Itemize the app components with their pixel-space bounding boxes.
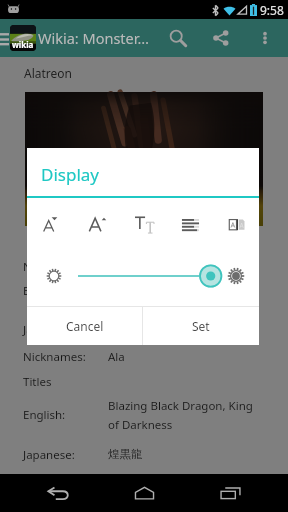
button[interactable]: Open navigation drawer (0, 19, 9, 57)
button[interactable]: Back (30, 474, 86, 512)
staticText: Wikia: Monster… (38, 28, 160, 48)
staticText: 煌黒龍 (108, 447, 143, 461)
staticText: 9:58 (260, 2, 284, 18)
staticText: Japanese (23, 322, 108, 338)
button[interactable]: Set (143, 307, 259, 345)
staticText: Japanese: (23, 447, 108, 463)
staticText: Blazing Black Dragon, King of Darkness (108, 398, 253, 432)
button[interactable]: Change theme (213, 198, 259, 251)
button[interactable]: More options (247, 19, 282, 57)
staticText: Display (41, 163, 99, 186)
button[interactable]: Share (201, 19, 240, 57)
staticText: Cancel (66, 318, 104, 334)
staticText: Element: (23, 283, 108, 299)
button[interactable]: Brightness (65, 263, 235, 289)
button[interactable]: Increase text size (74, 198, 121, 251)
staticText: Alatreon (24, 65, 72, 81)
staticText: English: (23, 407, 108, 423)
staticText: Ala (108, 349, 125, 365)
button[interactable]: Text alignment (167, 198, 213, 251)
button[interactable]: Search (158, 19, 197, 57)
button[interactable]: Change font (121, 198, 167, 251)
staticText: Nicknames: (23, 349, 108, 365)
button[interactable]: Cancel (27, 307, 142, 345)
staticText: Titles (23, 374, 108, 390)
staticText: Names (23, 259, 108, 275)
button[interactable]: Home (116, 474, 172, 512)
button[interactable]: Decrease text size (27, 198, 74, 251)
staticText: Set (192, 318, 210, 334)
button[interactable]: Recent apps (202, 474, 258, 512)
staticText: wikia (12, 39, 34, 50)
